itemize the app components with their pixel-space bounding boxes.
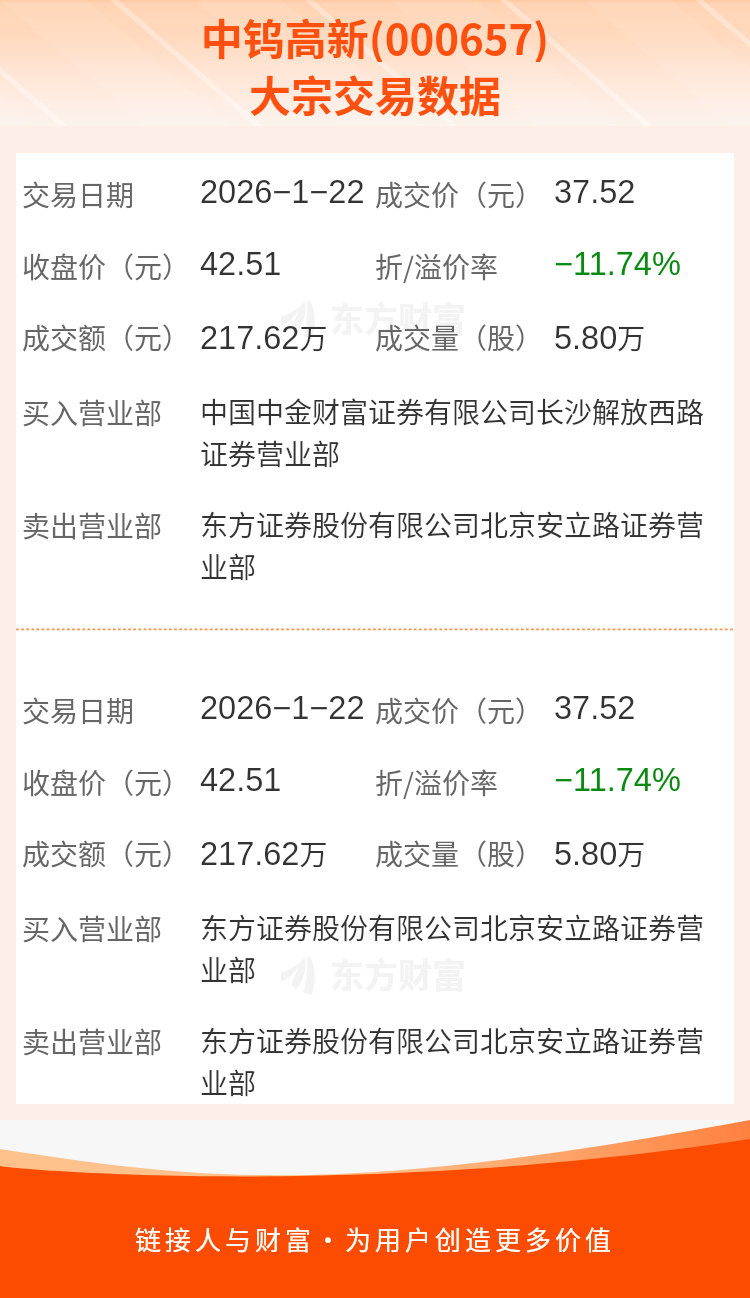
staticText: 交易日期 (22, 174, 135, 215)
staticText: 收盘价（元） (22, 246, 191, 287)
staticText: 大宗交易数据 (0, 63, 750, 119)
staticText: 成交量（股） (375, 833, 544, 874)
staticText: 折/溢价率 (375, 762, 498, 803)
staticText: 217.62万 (200, 317, 328, 358)
staticText: 成交价（元） (375, 690, 544, 731)
staticText: 5.80万 (554, 833, 646, 874)
staticText: −11.74% (554, 762, 681, 798)
staticText: 2026−1−22 (200, 690, 365, 726)
staticText: 成交额（元） (22, 317, 191, 358)
staticText: −11.74% (554, 246, 681, 282)
staticText: 东方财富 (330, 293, 466, 342)
staticText: 成交价（元） (375, 174, 544, 215)
staticText: 买入营业部 (22, 392, 163, 433)
staticText: 成交量（股） (375, 317, 544, 358)
staticText: 东方证券股份有限公司北京安立路证券营业部 (200, 907, 712, 989)
staticText: 217.62万 (200, 833, 328, 874)
staticText: 5.80万 (554, 317, 646, 358)
staticText: 卖出营业部 (22, 1021, 163, 1062)
staticText: 链接人与财富·为用户创造更多价值 (0, 1220, 750, 1258)
staticText: 买入营业部 (22, 908, 163, 949)
staticText: 成交额（元） (22, 833, 191, 874)
staticText: 37.52 (554, 690, 636, 726)
staticText: 42.51 (200, 246, 282, 282)
staticText: 42.51 (200, 762, 282, 798)
staticText: 东方证券股份有限公司北京安立路证券营业部 (200, 1020, 712, 1102)
staticText: 东方财富 (330, 949, 466, 998)
staticText: 东方证券股份有限公司北京安立路证券营业部 (200, 504, 712, 586)
staticText: 收盘价（元） (22, 762, 191, 803)
staticText: 2026−1−22 (200, 174, 365, 210)
staticText: 卖出营业部 (22, 505, 163, 546)
staticText: 交易日期 (22, 690, 135, 731)
staticText: 中钨高新(000657) (0, 6, 750, 62)
staticText: 37.52 (554, 174, 636, 210)
staticText: 中国中金财富证券有限公司长沙解放西路证券营业部 (200, 391, 712, 473)
staticText: 折/溢价率 (375, 246, 498, 287)
